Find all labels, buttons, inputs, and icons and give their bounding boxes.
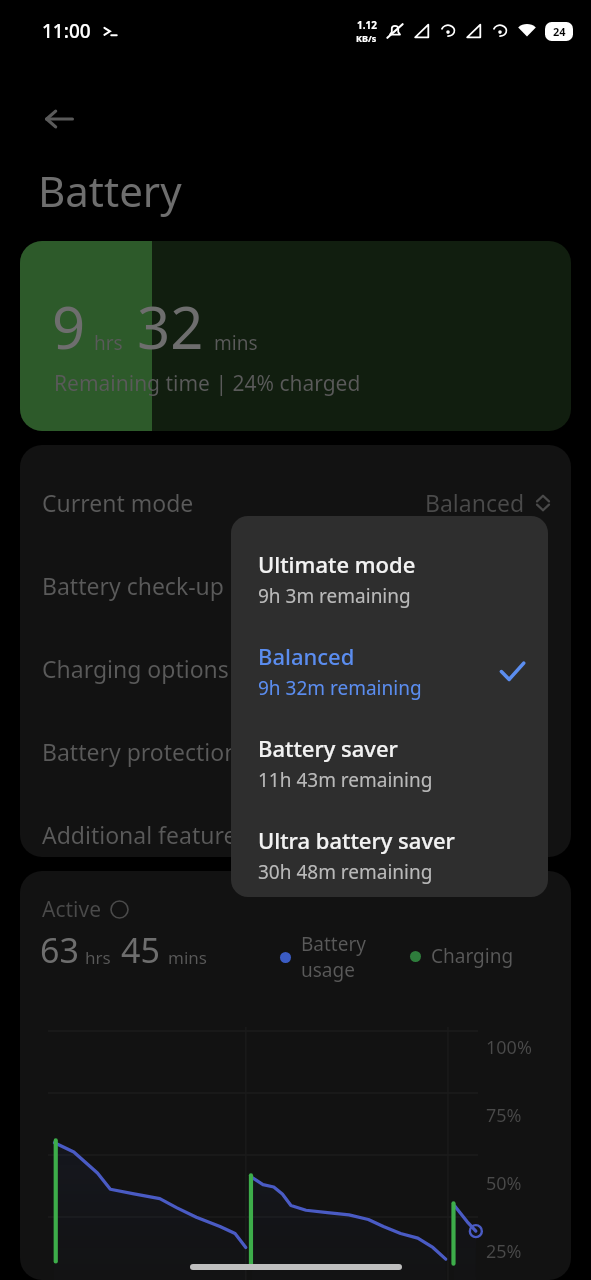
staticText: mins — [168, 946, 207, 969]
staticText: Battery protection — [42, 736, 239, 767]
staticText: Battery — [38, 162, 182, 219]
staticText: 75% — [486, 1103, 522, 1128]
button[interactable]: Battery protection — [20, 716, 571, 786]
staticText: Battery saver — [258, 733, 398, 763]
button[interactable]: Active — [20, 871, 571, 1280]
staticText: 50% — [486, 1171, 522, 1196]
staticText: Charging options — [42, 653, 229, 684]
staticText: 24 — [553, 24, 566, 39]
staticText: 63 — [40, 927, 79, 973]
staticText: Ultimate mode — [258, 549, 416, 579]
button[interactable]: Balanced — [231, 632, 548, 710]
staticText: Ultra battery saver — [258, 825, 455, 855]
staticText: Remaining time | 24% charged — [54, 369, 361, 398]
button[interactable]: Ultimate mode — [231, 540, 548, 618]
button[interactable]: Current mode — [20, 467, 571, 537]
staticText: Battery check-up — [42, 570, 224, 601]
button[interactable]: Additional features — [20, 799, 571, 857]
button[interactable]: Back — [28, 88, 90, 150]
staticText: Additional features — [42, 819, 248, 850]
staticText: 32 — [137, 287, 204, 366]
staticText: 30h 48m remaining — [258, 859, 433, 885]
staticText: 11:00 — [42, 18, 91, 44]
staticText: 9h 3m remaining — [258, 583, 411, 609]
button[interactable]: Battery check-up — [20, 550, 571, 620]
staticText: 45 — [121, 927, 160, 973]
staticText: 100% — [486, 1035, 532, 1060]
staticText: 11h 43m remaining — [258, 767, 433, 793]
button[interactable]: Battery saver — [231, 724, 548, 802]
staticText: KB/s — [356, 32, 377, 44]
staticText: mins — [214, 330, 258, 356]
staticText: Current mode — [42, 487, 194, 518]
staticText: 9h 32m remaining — [258, 675, 422, 701]
staticText: 9 — [52, 287, 86, 366]
staticText: Charging — [431, 943, 514, 969]
staticText: hrs — [94, 330, 123, 356]
staticText: hrs — [85, 946, 111, 969]
button[interactable]: Ultra battery saver — [231, 816, 548, 894]
staticText: Balanced — [425, 487, 525, 518]
staticText: Battery usage — [301, 931, 366, 983]
button[interactable]: 9 — [20, 241, 571, 431]
staticText: Active — [42, 895, 102, 924]
staticText: 1.12 — [357, 18, 377, 32]
staticText: 25% — [486, 1239, 522, 1264]
button[interactable]: Charging options — [20, 633, 571, 703]
staticText: Balanced — [258, 641, 355, 671]
